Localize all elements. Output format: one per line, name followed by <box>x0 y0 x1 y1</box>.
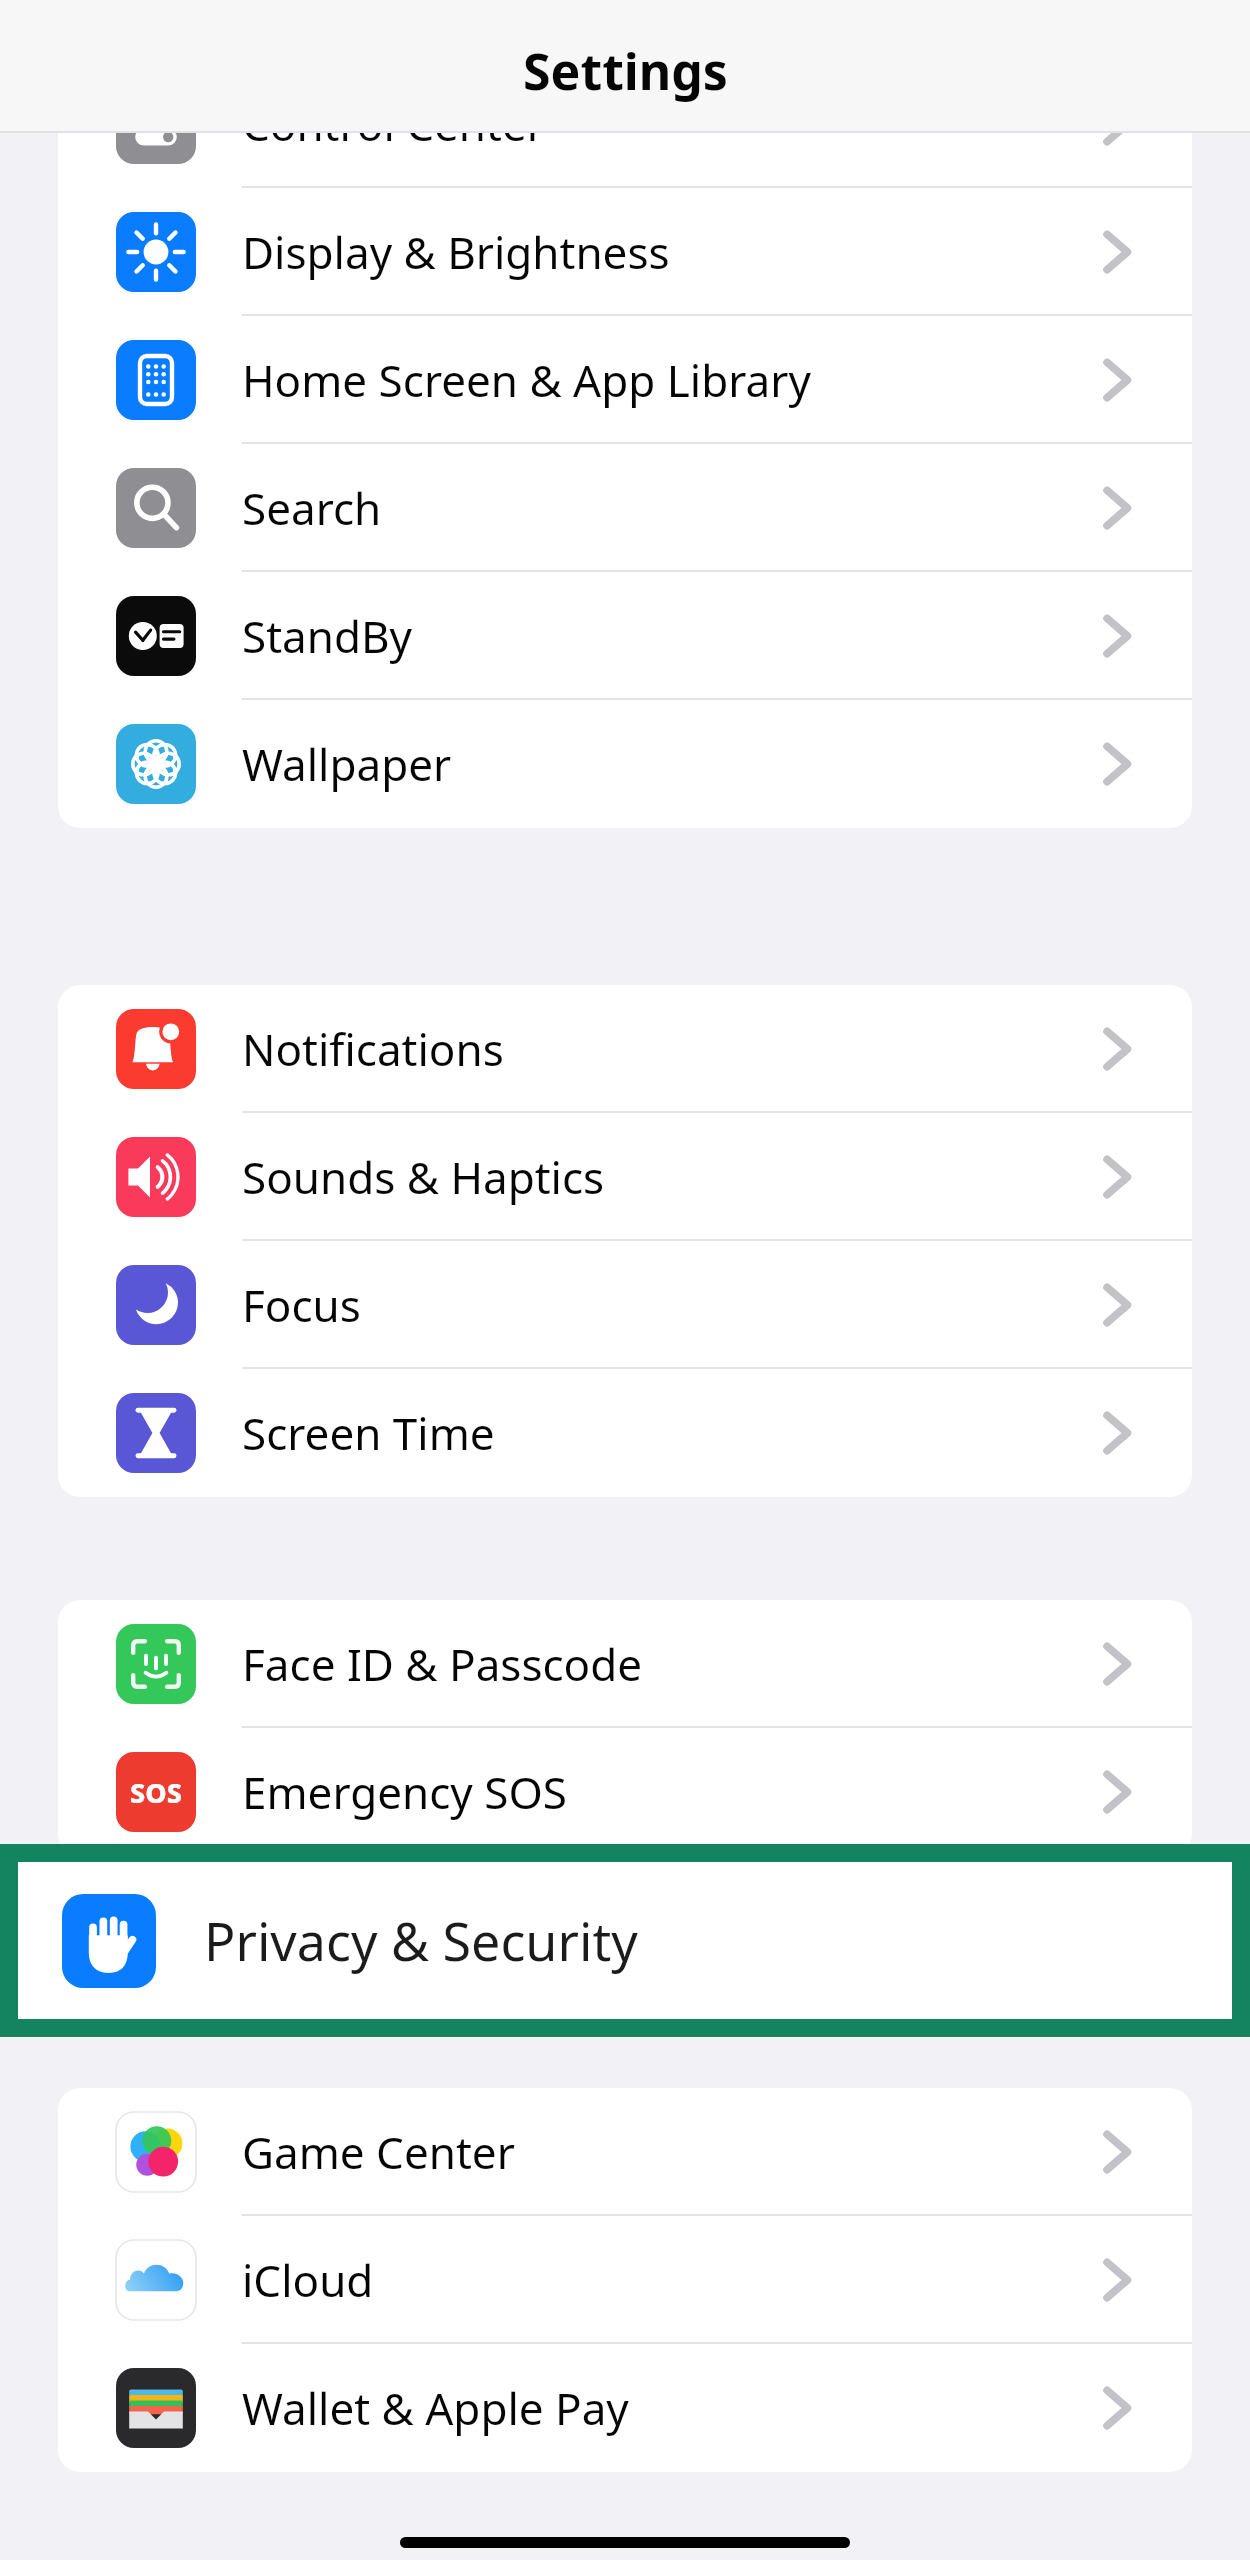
staticText: Emergency SOS <box>242 1762 567 1822</box>
button[interactable]: iCloud <box>58 2216 1192 2344</box>
button[interactable]: Game Center <box>58 2088 1192 2216</box>
staticText: Face ID & Passcode <box>242 1634 643 1694</box>
staticText: iCloud <box>242 2250 374 2310</box>
staticText: Game Center <box>242 2122 515 2182</box>
staticText: Display & Brightness <box>242 222 670 282</box>
staticText: Screen Time <box>242 1403 495 1463</box>
staticText: SOS <box>130 1774 182 1811</box>
button[interactable]: Focus <box>58 1241 1192 1369</box>
button[interactable]: Wallpaper <box>58 700 1192 828</box>
button[interactable]: Notifications <box>58 985 1192 1113</box>
staticText: Notifications <box>242 1019 504 1079</box>
staticText: Privacy & Security <box>204 1905 638 1976</box>
button[interactable]: SOS <box>58 1728 1192 1856</box>
staticText: Home Screen & App Library <box>242 350 811 410</box>
staticText: StandBy <box>242 606 413 666</box>
button[interactable]: Control Center <box>58 60 1192 188</box>
button[interactable]: Display & Brightness <box>58 188 1192 316</box>
staticText: Control Center <box>242 94 545 154</box>
staticText: Search <box>242 478 382 538</box>
button[interactable]: Wallet & Apple Pay <box>58 2344 1192 2472</box>
button[interactable]: Home Screen & App Library <box>58 316 1192 444</box>
staticText: Sounds & Haptics <box>242 1147 605 1207</box>
staticText: Focus <box>242 1275 361 1335</box>
button[interactable]: Search <box>58 444 1192 572</box>
button[interactable]: Face ID & Passcode <box>58 1600 1192 1728</box>
staticText: Wallpaper <box>242 734 452 794</box>
button[interactable]: StandBy <box>58 572 1192 700</box>
staticText: Settings <box>523 37 728 105</box>
button[interactable]: Screen Time <box>58 1369 1192 1497</box>
staticText: Wallet & Apple Pay <box>242 2378 629 2438</box>
button[interactable]: Privacy & Security <box>0 1844 1250 2037</box>
button[interactable]: Sounds & Haptics <box>58 1113 1192 1241</box>
